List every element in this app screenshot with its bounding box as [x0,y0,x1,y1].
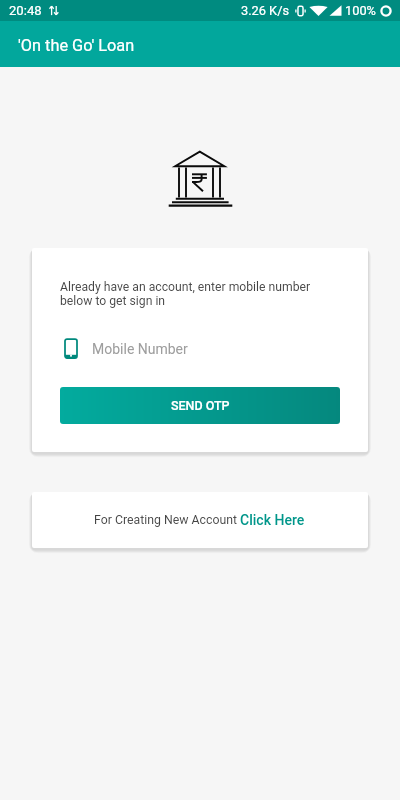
staticText: SEND OTP [171,398,230,413]
staticText: For Creating New Account [94,513,238,527]
other: Mobile phone [64,338,78,359]
staticText: 3.26 K/s [241,3,290,18]
button[interactable]: SEND OTP [60,387,340,424]
staticText: 20:48 [9,3,42,18]
other: Mobile signal [329,4,342,17]
staticText: Already have an account, enter mobile nu… [60,280,311,308]
other: Battery 100 percent [380,5,392,17]
button[interactable]: For Creating New Account [32,492,368,548]
staticText: 'On the Go' Loan [18,36,135,55]
other: Vibrate mode [295,5,306,17]
other: Wi-Fi [309,4,328,17]
other: Bank [168,151,233,207]
other: Data transfer [49,5,59,16]
button[interactable]: Click Here [240,512,305,528]
staticText: Mobile Number [92,341,188,357]
staticText: 100% [345,3,376,18]
button[interactable]: Mobile phone [60,338,356,359]
